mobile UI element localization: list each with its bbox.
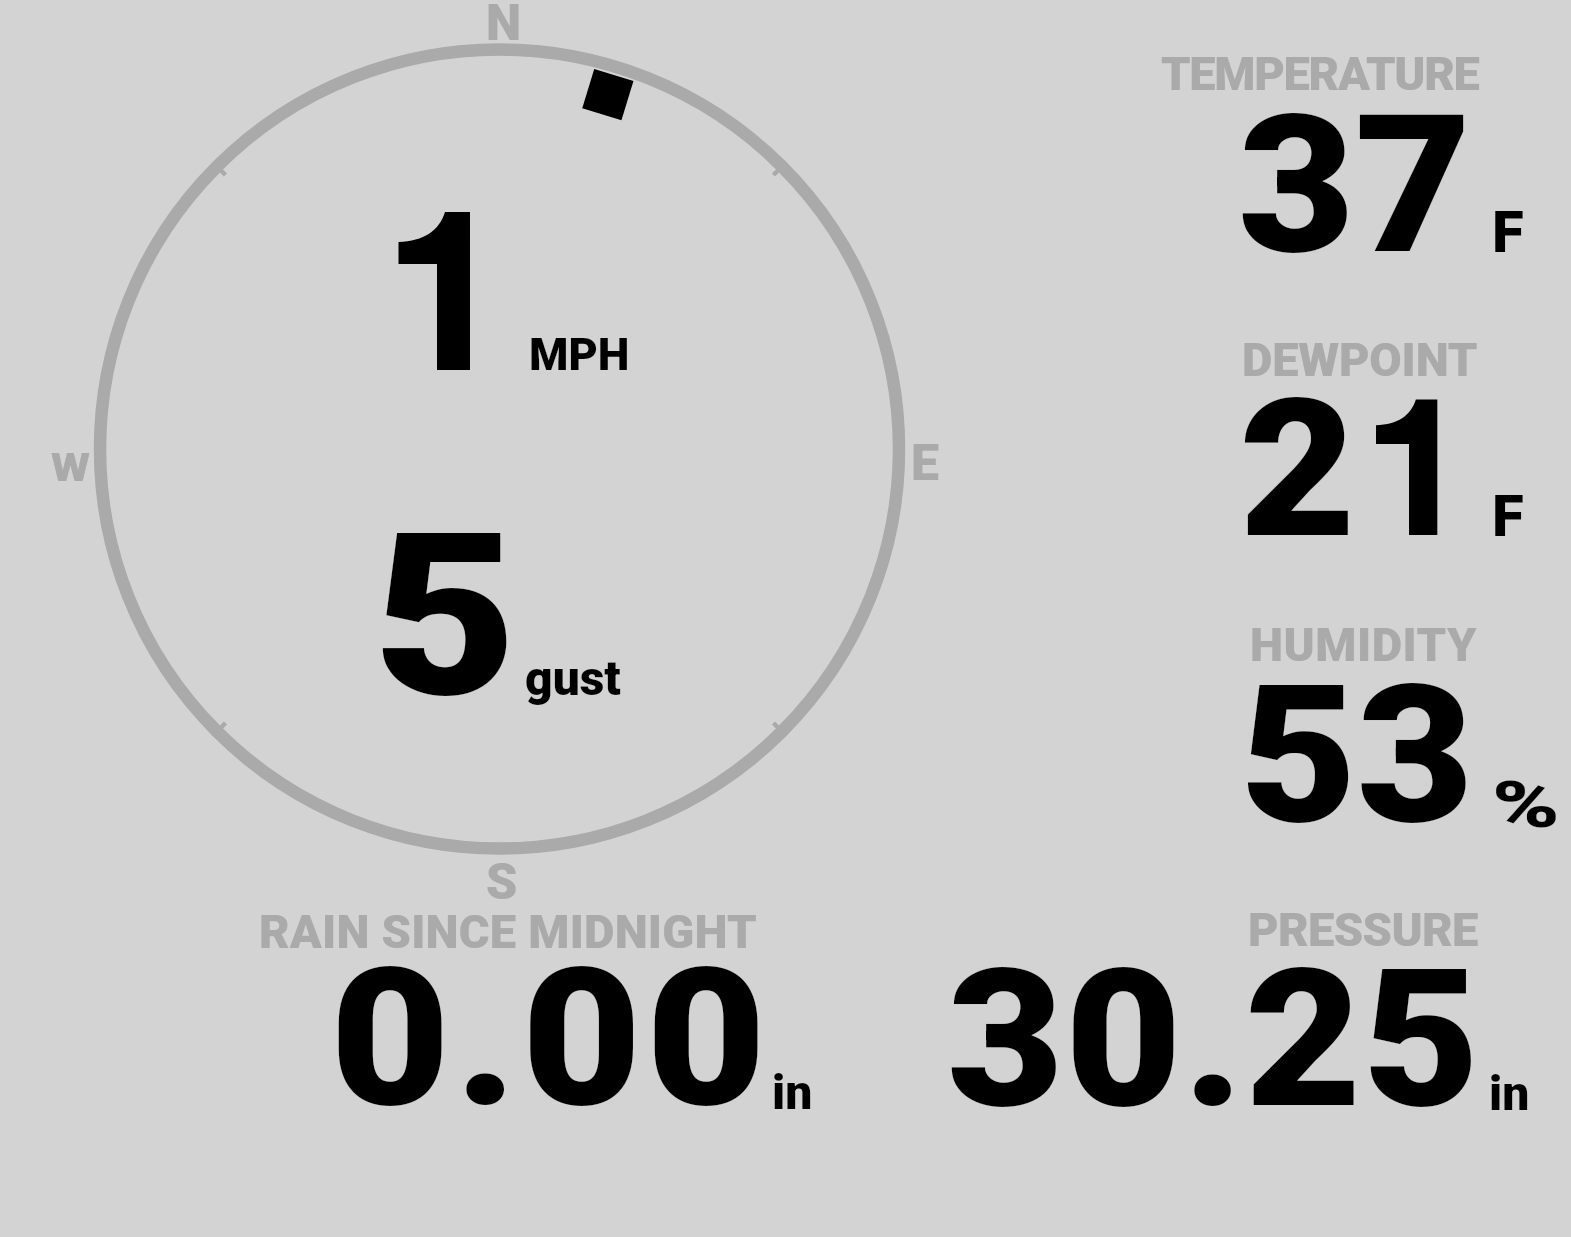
button[interactable]: Wind direction compass, 1 mile per hour,… <box>94 44 906 856</box>
button[interactable]: Rain since midnight 0.00 inches <box>250 900 820 1115</box>
staticText: E <box>911 434 939 493</box>
staticText: 0.00 <box>330 926 771 1151</box>
button[interactable]: Humidity 53 percent <box>1150 610 1560 835</box>
staticText: TEMPERATURE <box>1161 46 1479 101</box>
staticText: 5 <box>373 484 517 749</box>
staticText: F <box>1492 482 1524 550</box>
staticText: PRESSURE <box>1248 902 1478 957</box>
button[interactable]: Pressure 30.25 inches <box>930 898 1560 1113</box>
staticText: MPH <box>529 328 630 381</box>
staticText: DEWPOINT <box>1242 332 1478 387</box>
staticText: N <box>486 0 522 53</box>
staticText: S <box>486 853 518 912</box>
staticText: F <box>1492 198 1524 266</box>
staticText: % <box>1492 768 1560 843</box>
button[interactable]: Temperature 37 degrees Fahrenheit <box>1150 40 1560 265</box>
staticText: gust <box>525 650 621 706</box>
staticText: W <box>51 446 91 491</box>
staticText: 30.25 <box>947 927 1481 1152</box>
staticText: 2 <box>1239 357 1357 582</box>
staticText: 53 <box>1240 643 1474 868</box>
staticText: in <box>772 1064 813 1120</box>
staticText: HUMIDITY <box>1250 617 1478 672</box>
staticText: 37 <box>1238 73 1472 298</box>
button[interactable]: Dewpoint 21 degrees Fahrenheit <box>1150 325 1560 550</box>
staticText: RAIN SINCE MIDNIGHT <box>259 904 757 959</box>
staticText: in <box>1489 1065 1530 1121</box>
